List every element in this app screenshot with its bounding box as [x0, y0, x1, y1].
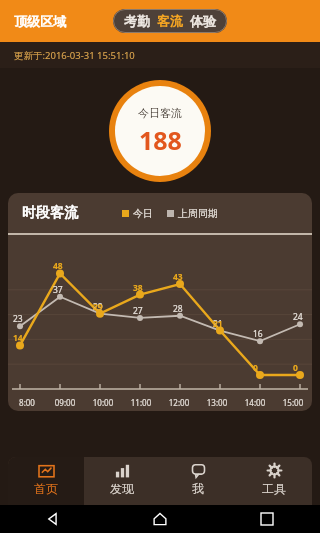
staticText: 43: [173, 271, 183, 283]
staticText: 12:00: [160, 397, 198, 408]
other: 首页: [39, 463, 54, 478]
button[interactable]: 体验: [190, 13, 216, 29]
staticText: 客流: [157, 13, 183, 29]
other: 发现: [115, 463, 130, 478]
other: 工具: [267, 463, 282, 478]
staticText: 首页: [34, 481, 58, 496]
button[interactable]: 考勤: [124, 13, 150, 29]
staticText: 21: [213, 318, 223, 330]
staticText: 37: [53, 284, 63, 296]
button[interactable]: Home: [106, 505, 213, 533]
staticText: 顶级区域: [14, 13, 66, 29]
other: 我: [191, 463, 206, 478]
staticText: 29: [93, 301, 103, 313]
staticText: 11:00: [122, 397, 160, 408]
staticText: 13:00: [198, 397, 236, 408]
staticText: 14:00: [236, 397, 274, 408]
staticText: 我: [192, 481, 204, 496]
staticText: 48: [53, 260, 63, 272]
staticText: 考勤: [124, 13, 150, 29]
button[interactable]: 发现: [84, 457, 160, 505]
staticText: 16: [253, 328, 263, 340]
staticText: 09:00: [46, 397, 84, 408]
staticText: 10:00: [84, 397, 122, 408]
staticText: 0: [253, 362, 258, 374]
button[interactable]: 时段客流: [8, 193, 312, 411]
button[interactable]: Recents: [213, 505, 320, 533]
button[interactable]: 工具: [236, 457, 312, 505]
staticText: 8:00: [8, 397, 46, 408]
staticText: 28: [173, 303, 183, 315]
staticText: 今日: [133, 207, 153, 220]
staticText: 188: [139, 123, 182, 157]
button[interactable]: 我: [160, 457, 236, 505]
staticText: 15:00: [274, 397, 312, 408]
staticText: 上周同期: [178, 207, 218, 220]
staticText: 今日客流: [138, 106, 182, 120]
staticText: 29: [93, 301, 103, 313]
staticText: 发现: [110, 481, 134, 496]
staticText: 23: [13, 313, 23, 325]
staticText: 14: [13, 332, 23, 344]
staticText: 24: [293, 311, 303, 323]
staticText: 38: [133, 282, 143, 294]
button[interactable]: 首页: [8, 457, 84, 505]
staticText: 0: [293, 362, 298, 374]
staticText: 更新于:2016-03-31 15:51:10: [14, 49, 135, 62]
button[interactable]: 今日客流: [115, 86, 205, 176]
staticText: 27: [133, 305, 143, 317]
staticText: 21: [213, 318, 223, 330]
staticText: 体验: [190, 13, 216, 29]
button[interactable]: Back: [0, 505, 106, 533]
button[interactable]: 客流: [157, 13, 183, 29]
staticText: 工具: [262, 481, 286, 496]
staticText: 时段客流: [22, 204, 78, 222]
